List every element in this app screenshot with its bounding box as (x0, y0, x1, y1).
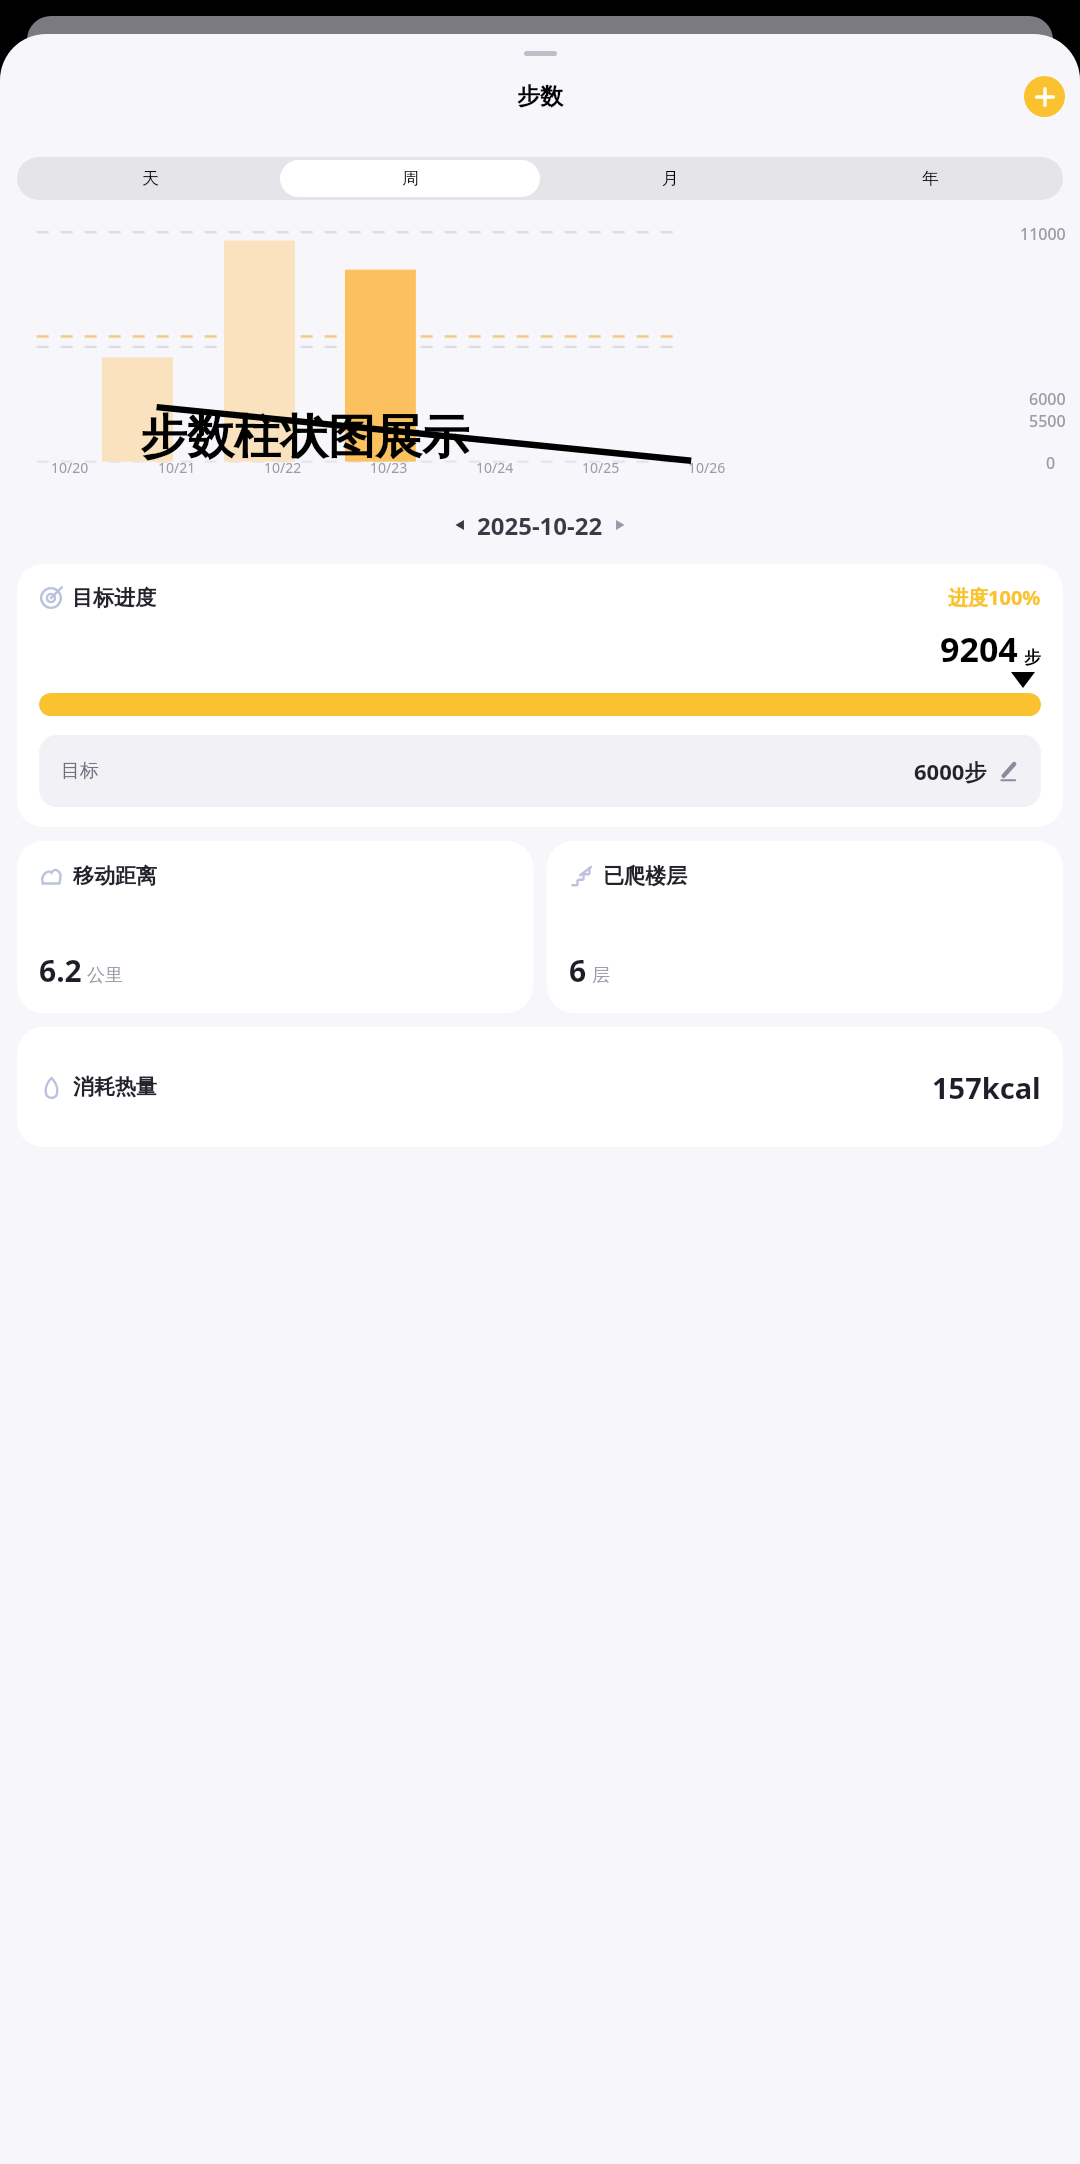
button[interactable]: 目标 (39, 735, 1041, 807)
staticText: 6000步 (914, 756, 987, 786)
staticText: 5500 (1029, 410, 1066, 432)
other: 上一周 (451, 516, 469, 534)
other: 编辑目标 (997, 760, 1019, 782)
button[interactable]: 移动距离 (17, 841, 533, 1013)
other: 下一周 (611, 516, 629, 534)
button[interactable]: 消耗热量 (17, 1027, 1063, 1147)
button[interactable]: 添加 (1024, 76, 1065, 117)
button[interactable]: 月 (540, 160, 800, 197)
button[interactable]: 已爬楼层 (547, 841, 1063, 1013)
staticText: 10/22 (264, 458, 302, 477)
staticText: 目标 (61, 759, 99, 783)
button[interactable]: 目标进度 (17, 564, 1063, 827)
button[interactable]: 周 (280, 160, 540, 197)
staticText: 年 (922, 168, 939, 189)
staticText: 天 (142, 168, 159, 189)
staticText: 步 (1024, 647, 1041, 668)
staticText: 6.2 (39, 950, 82, 991)
staticText: 公里 (87, 964, 123, 987)
staticText: 6000 (1029, 388, 1066, 410)
staticText: 10/24 (476, 458, 514, 477)
staticText: 层 (592, 964, 610, 987)
staticText: 移动距离 (73, 863, 157, 889)
staticText: 11000 (1020, 223, 1066, 245)
button[interactable]: 上一周 (0, 498, 1080, 552)
button[interactable]: 年 (800, 160, 1060, 197)
staticText: 消耗热量 (73, 1074, 157, 1100)
button[interactable]: 天 (20, 160, 280, 197)
staticText: 10/25 (582, 458, 620, 477)
staticText: 9204 (940, 626, 1018, 672)
staticText: 步数柱状图展示 (140, 408, 469, 467)
staticText: 10/20 (51, 458, 89, 477)
staticText: 目标进度 (72, 585, 156, 611)
staticText: 2025-10-22 (477, 509, 603, 542)
staticText: 步数 (517, 82, 563, 111)
staticText: 10/23 (370, 458, 408, 477)
staticText: 月 (662, 168, 679, 189)
staticText: 6 (569, 950, 587, 991)
staticText: 0 (1046, 452, 1056, 474)
staticText: 10/21 (158, 458, 196, 477)
staticText: 10/26 (688, 458, 726, 477)
staticText: 已爬楼层 (603, 863, 687, 889)
staticText: 周 (402, 168, 419, 189)
staticText: 157kcal (932, 1068, 1041, 1107)
staticText: 进度100% (948, 584, 1041, 611)
